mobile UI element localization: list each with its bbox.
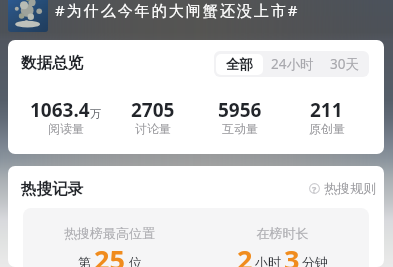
- button[interactable]: ?: [305, 178, 380, 198]
- staticText: 30天: [330, 55, 359, 73]
- staticText: ?: [312, 183, 317, 194]
- staticText: 原创量: [309, 121, 345, 136]
- staticText: 位: [129, 254, 142, 267]
- staticText: 211: [310, 97, 343, 123]
- staticText: 第: [78, 254, 91, 267]
- button[interactable]: #为什么今年的大闸蟹还没上市#: [55, 0, 300, 20]
- button[interactable]: 话题封面: [8, 0, 48, 32]
- button[interactable]: 24小时: [263, 53, 322, 75]
- button[interactable]: 全部: [216, 54, 263, 75]
- staticText: 万: [90, 107, 102, 121]
- staticText: 阅读量: [48, 121, 84, 136]
- staticText: 在榜时长: [196, 225, 369, 241]
- staticText: 分钟: [302, 254, 328, 267]
- staticText: 热搜规则: [324, 180, 376, 196]
- staticText: 24小时: [271, 55, 314, 73]
- staticText: 讨论量: [135, 121, 171, 136]
- staticText: 25: [94, 241, 125, 267]
- staticText: 2705: [131, 97, 175, 123]
- staticText: 热搜榜最高位置: [23, 225, 196, 241]
- staticText: 小时: [255, 254, 281, 267]
- staticText: 3: [284, 241, 300, 267]
- button[interactable]: 30天: [322, 53, 367, 75]
- staticText: 互动量: [222, 121, 258, 136]
- staticText: 热搜记录: [21, 179, 83, 199]
- staticText: 全部: [226, 56, 253, 73]
- staticText: 5956: [218, 97, 262, 123]
- staticText: 1063.4: [30, 97, 90, 123]
- staticText: 2: [237, 241, 253, 267]
- staticText: 数据总览: [21, 53, 83, 73]
